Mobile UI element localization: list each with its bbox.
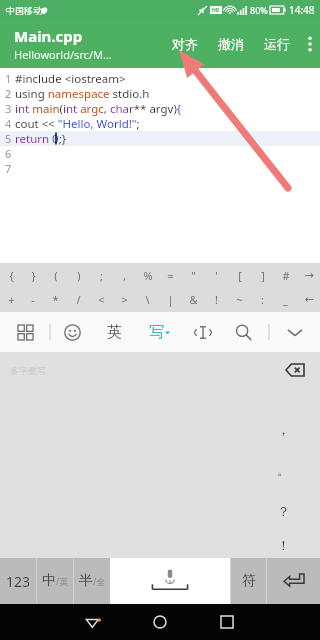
button[interactable]: Emoji — [51, 312, 93, 352]
button[interactable]: Backspace — [286, 364, 304, 376]
button[interactable]: ~ — [228, 287, 251, 312]
button[interactable]: ( — [44, 263, 67, 287]
button[interactable]: * — [44, 287, 67, 312]
staticText: 中/英 — [42, 572, 69, 590]
button[interactable]: > — [113, 287, 136, 312]
staticText: ？ — [277, 503, 290, 519]
button[interactable]: 写 — [135, 312, 183, 352]
button[interactable]: [ — [228, 263, 251, 287]
staticText: / — [76, 292, 81, 307]
staticText: ！ — [277, 537, 290, 553]
staticText: cout << "Hello, World!"; — [15, 116, 140, 131]
button[interactable]: { — [0, 263, 22, 287]
button[interactable]: 123 — [0, 558, 36, 604]
button[interactable]: ！ — [270, 531, 296, 558]
staticText: 写 — [149, 323, 164, 342]
button[interactable]: 半/全 — [74, 558, 110, 604]
staticText: int main(int argc, char** argv){ — [15, 101, 182, 116]
button[interactable]: / — [67, 287, 90, 312]
button[interactable]: + — [0, 287, 22, 312]
button[interactable]: Move cursor — [183, 312, 223, 352]
button[interactable]: # — [274, 263, 297, 287]
staticText: 英 — [107, 323, 122, 342]
staticText: | — [167, 292, 174, 307]
staticText: using namespace stdio.h — [15, 86, 150, 101]
button[interactable]: ) — [67, 263, 90, 287]
button[interactable]: : — [251, 287, 274, 312]
staticText: return 0;} — [15, 131, 67, 146]
button[interactable]: More options — [300, 27, 320, 61]
button[interactable]: Keyboard layouts — [0, 312, 50, 352]
button[interactable]: 撤消 — [208, 28, 254, 60]
staticText: & — [189, 292, 198, 307]
button[interactable]: 1 — [0, 68, 320, 263]
button[interactable]: % — [136, 263, 159, 287]
button[interactable]: _ — [274, 287, 297, 312]
staticText: 多字叠写 — [10, 365, 46, 376]
button[interactable]: ; — [90, 263, 113, 287]
button[interactable]: Enter — [267, 558, 320, 604]
staticText: # — [282, 268, 290, 283]
staticText: > — [121, 292, 128, 307]
button[interactable]: < — [90, 287, 113, 312]
button[interactable]: 中/英 — [37, 558, 73, 604]
button[interactable]: ! — [205, 287, 228, 312]
button[interactable]: 英 — [93, 312, 135, 352]
staticText: HD — [212, 7, 220, 14]
button[interactable]: , — [113, 263, 136, 287]
staticText: " — [191, 268, 196, 283]
button[interactable]: Home — [126, 604, 193, 640]
staticText: + — [8, 292, 15, 307]
staticText: [ — [238, 268, 242, 283]
staticText: 7 — [5, 161, 12, 176]
staticText: \ — [145, 292, 150, 307]
staticText: < — [98, 292, 105, 307]
button[interactable]: } — [22, 263, 44, 287]
staticText: 对齐 — [172, 36, 198, 52]
staticText: 2 — [5, 86, 12, 101]
staticText: 14:48 — [289, 3, 315, 17]
button[interactable]: Search — [223, 312, 263, 352]
button[interactable]: 多字叠写 — [0, 352, 320, 558]
button[interactable]: ？ — [270, 490, 296, 531]
button[interactable]: ， — [270, 408, 296, 449]
button[interactable]: - — [22, 287, 44, 312]
staticText: 6 — [5, 146, 12, 161]
staticText: , — [123, 268, 126, 283]
staticText: 5 — [5, 131, 12, 146]
button[interactable]: Recent apps — [193, 604, 260, 640]
staticText: Main.cpp — [14, 26, 83, 46]
button[interactable]: ' — [205, 263, 228, 287]
button[interactable]: = — [159, 263, 182, 287]
staticText: ← — [304, 293, 314, 306]
button[interactable]: ← — [297, 287, 320, 312]
button[interactable]: | — [159, 287, 182, 312]
button[interactable]: 运行 — [254, 28, 300, 60]
staticText: 撤消 — [218, 36, 244, 52]
button[interactable]: Hide keyboard — [270, 312, 320, 352]
button[interactable]: Back — [60, 604, 126, 640]
staticText: _ — [283, 292, 288, 307]
button[interactable]: 符 — [231, 558, 266, 604]
staticText: 半/全 — [79, 572, 106, 590]
staticText: 123 — [6, 572, 31, 591]
button[interactable]: & — [182, 287, 205, 312]
staticText: 。 — [277, 462, 290, 478]
staticText: 符 — [242, 572, 256, 590]
staticText: 4 — [5, 116, 12, 131]
staticText: ) — [77, 268, 81, 283]
staticText: ' — [215, 268, 218, 283]
button[interactable]: " — [182, 263, 205, 287]
staticText: 80% — [250, 4, 268, 16]
button[interactable]: \ — [136, 287, 159, 312]
staticText: % — [143, 268, 153, 283]
staticText: 3 — [5, 101, 12, 116]
button[interactable]: → — [297, 263, 320, 287]
staticText: : — [261, 292, 264, 307]
button[interactable]: Space — [110, 558, 230, 604]
button[interactable]: ] — [251, 263, 274, 287]
button[interactable]: 。 — [270, 449, 296, 490]
staticText: #include <iostream> — [15, 71, 126, 86]
staticText: ; — [100, 268, 103, 283]
button[interactable]: 对齐 — [162, 28, 208, 60]
